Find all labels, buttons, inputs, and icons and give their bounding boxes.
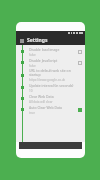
button[interactable]: URL to default web site on startup	[16, 68, 85, 82]
staticText: 10	[29, 89, 33, 93]
button[interactable]: Open navigation menu	[19, 38, 24, 43]
button[interactable]: Checkbox, unchecked	[78, 50, 82, 54]
staticText: true	[29, 111, 35, 115]
button[interactable]: Checkbox, unchecked	[78, 61, 82, 65]
button[interactable]: Disable load image	[16, 46, 85, 57]
staticText: https://www.google.co.uk	[29, 78, 66, 82]
staticText: All data will clear	[29, 100, 53, 104]
staticText: URL to default web site on startup	[29, 68, 75, 77]
staticText: false	[29, 64, 36, 68]
button[interactable]: Disable JavaScript	[16, 57, 85, 68]
button[interactable]: Clear Web Data	[16, 93, 85, 104]
staticText: Update interval (in seconds)	[29, 83, 74, 88]
staticText: Auto Clear Web Data	[29, 105, 63, 110]
staticText: Disable JavaScript	[29, 58, 58, 63]
button[interactable]: Update interval (in seconds)	[16, 82, 85, 93]
staticText: Disable load image	[29, 47, 60, 52]
button[interactable]: Open navigation menu	[16, 35, 85, 45]
staticText: false	[29, 53, 36, 57]
staticText: Settings	[27, 37, 48, 44]
button[interactable]: Auto Clear Web Data	[16, 104, 85, 115]
staticText: Clear Web Data	[29, 94, 54, 99]
